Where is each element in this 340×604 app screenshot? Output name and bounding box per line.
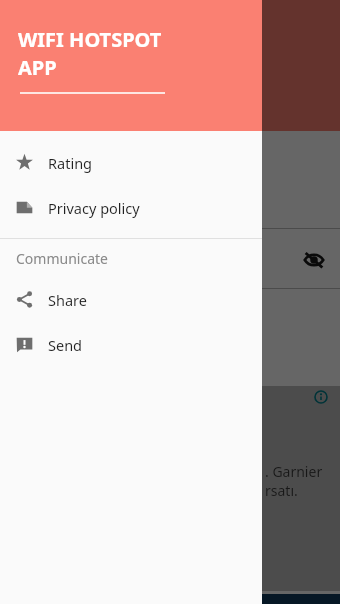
button[interactable]: Send: [0, 322, 262, 367]
staticText: WIFI HOTSPOT APP: [18, 26, 162, 81]
button[interactable]: WIFI HOTSPOT APP: [0, 0, 262, 131]
button[interactable]: Rating: [0, 140, 262, 185]
staticText: Communicate: [16, 249, 108, 268]
staticText: Share: [48, 290, 87, 310]
staticText: Privacy policy: [48, 198, 140, 218]
button[interactable]: Privacy policy: [0, 185, 262, 230]
staticText: . Garnier rsatı.: [265, 462, 323, 500]
staticText: Send: [48, 335, 83, 355]
button[interactable]: Hide: [300, 246, 328, 274]
button[interactable]: Share: [0, 277, 262, 322]
staticText: Rating: [48, 153, 93, 173]
